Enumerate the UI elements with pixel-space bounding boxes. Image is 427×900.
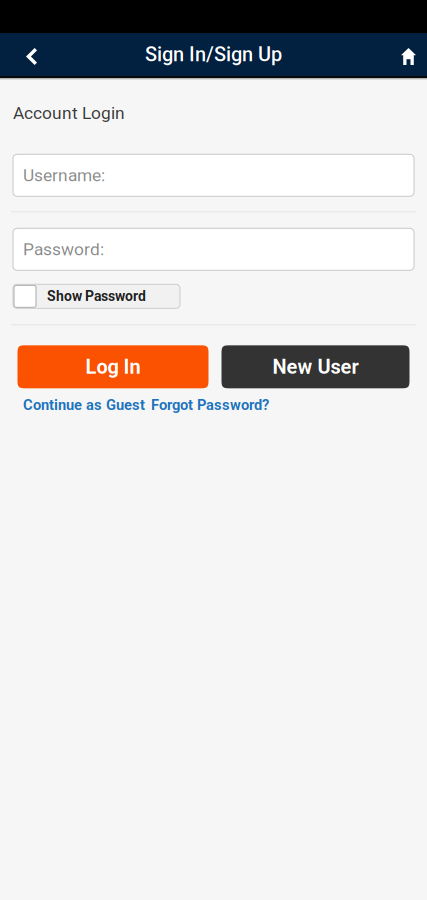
staticText: Account Login bbox=[13, 103, 125, 123]
staticText: New User bbox=[272, 355, 358, 378]
staticText: Log In bbox=[85, 355, 140, 378]
staticText: Password: bbox=[23, 239, 104, 259]
button[interactable]: Home bbox=[390, 33, 427, 76]
button[interactable]: Continue as Guest bbox=[23, 396, 145, 413]
staticText: Username: bbox=[23, 165, 105, 185]
staticText: Sign In/Sign Up bbox=[145, 43, 282, 66]
button[interactable]: Back bbox=[0, 33, 63, 76]
staticText: Continue as Guest bbox=[23, 396, 145, 413]
button[interactable]: New User bbox=[221, 345, 409, 388]
button[interactable]: Log In bbox=[17, 345, 208, 388]
staticText: Show Password bbox=[47, 288, 146, 304]
button[interactable]: Forgot Password? bbox=[151, 396, 269, 413]
staticText: Forgot Password? bbox=[151, 396, 269, 413]
button[interactable]: Show Password bbox=[13, 284, 180, 308]
